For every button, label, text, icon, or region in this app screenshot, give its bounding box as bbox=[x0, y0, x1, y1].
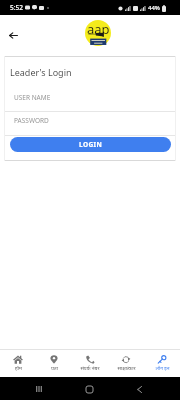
button[interactable]: लॉग इन bbox=[144, 350, 180, 377]
staticText: लॉग इन bbox=[155, 365, 170, 372]
staticText: aap bbox=[87, 20, 110, 38]
staticText: Leader's Login bbox=[10, 66, 72, 78]
staticText: USER NAME bbox=[14, 93, 51, 102]
button[interactable]: पता bbox=[36, 350, 72, 377]
button[interactable]: USER NAME bbox=[4, 88, 176, 111]
button[interactable]: PASSWORD bbox=[4, 112, 176, 135]
button[interactable]: Recents bbox=[32, 382, 46, 396]
button[interactable]: साक्षात्कार bbox=[108, 350, 144, 377]
staticText: PASSWORD bbox=[14, 116, 49, 125]
button[interactable]: Back bbox=[132, 382, 146, 396]
button[interactable]: Home bbox=[82, 382, 96, 396]
staticText: पता bbox=[51, 365, 58, 372]
button[interactable]: होम bbox=[0, 350, 36, 377]
staticText: संपर्क नंबर bbox=[80, 365, 100, 372]
button[interactable]: LOGIN bbox=[10, 137, 171, 152]
staticText: साक्षात्कार bbox=[117, 365, 136, 372]
staticText: 44% bbox=[148, 4, 160, 12]
button[interactable]: Back bbox=[3, 25, 23, 45]
staticText: होम bbox=[15, 365, 22, 372]
staticText: LOGIN bbox=[79, 140, 103, 149]
staticText: 5:52 bbox=[10, 3, 23, 12]
button[interactable]: संपर्क नंबर bbox=[72, 350, 108, 377]
